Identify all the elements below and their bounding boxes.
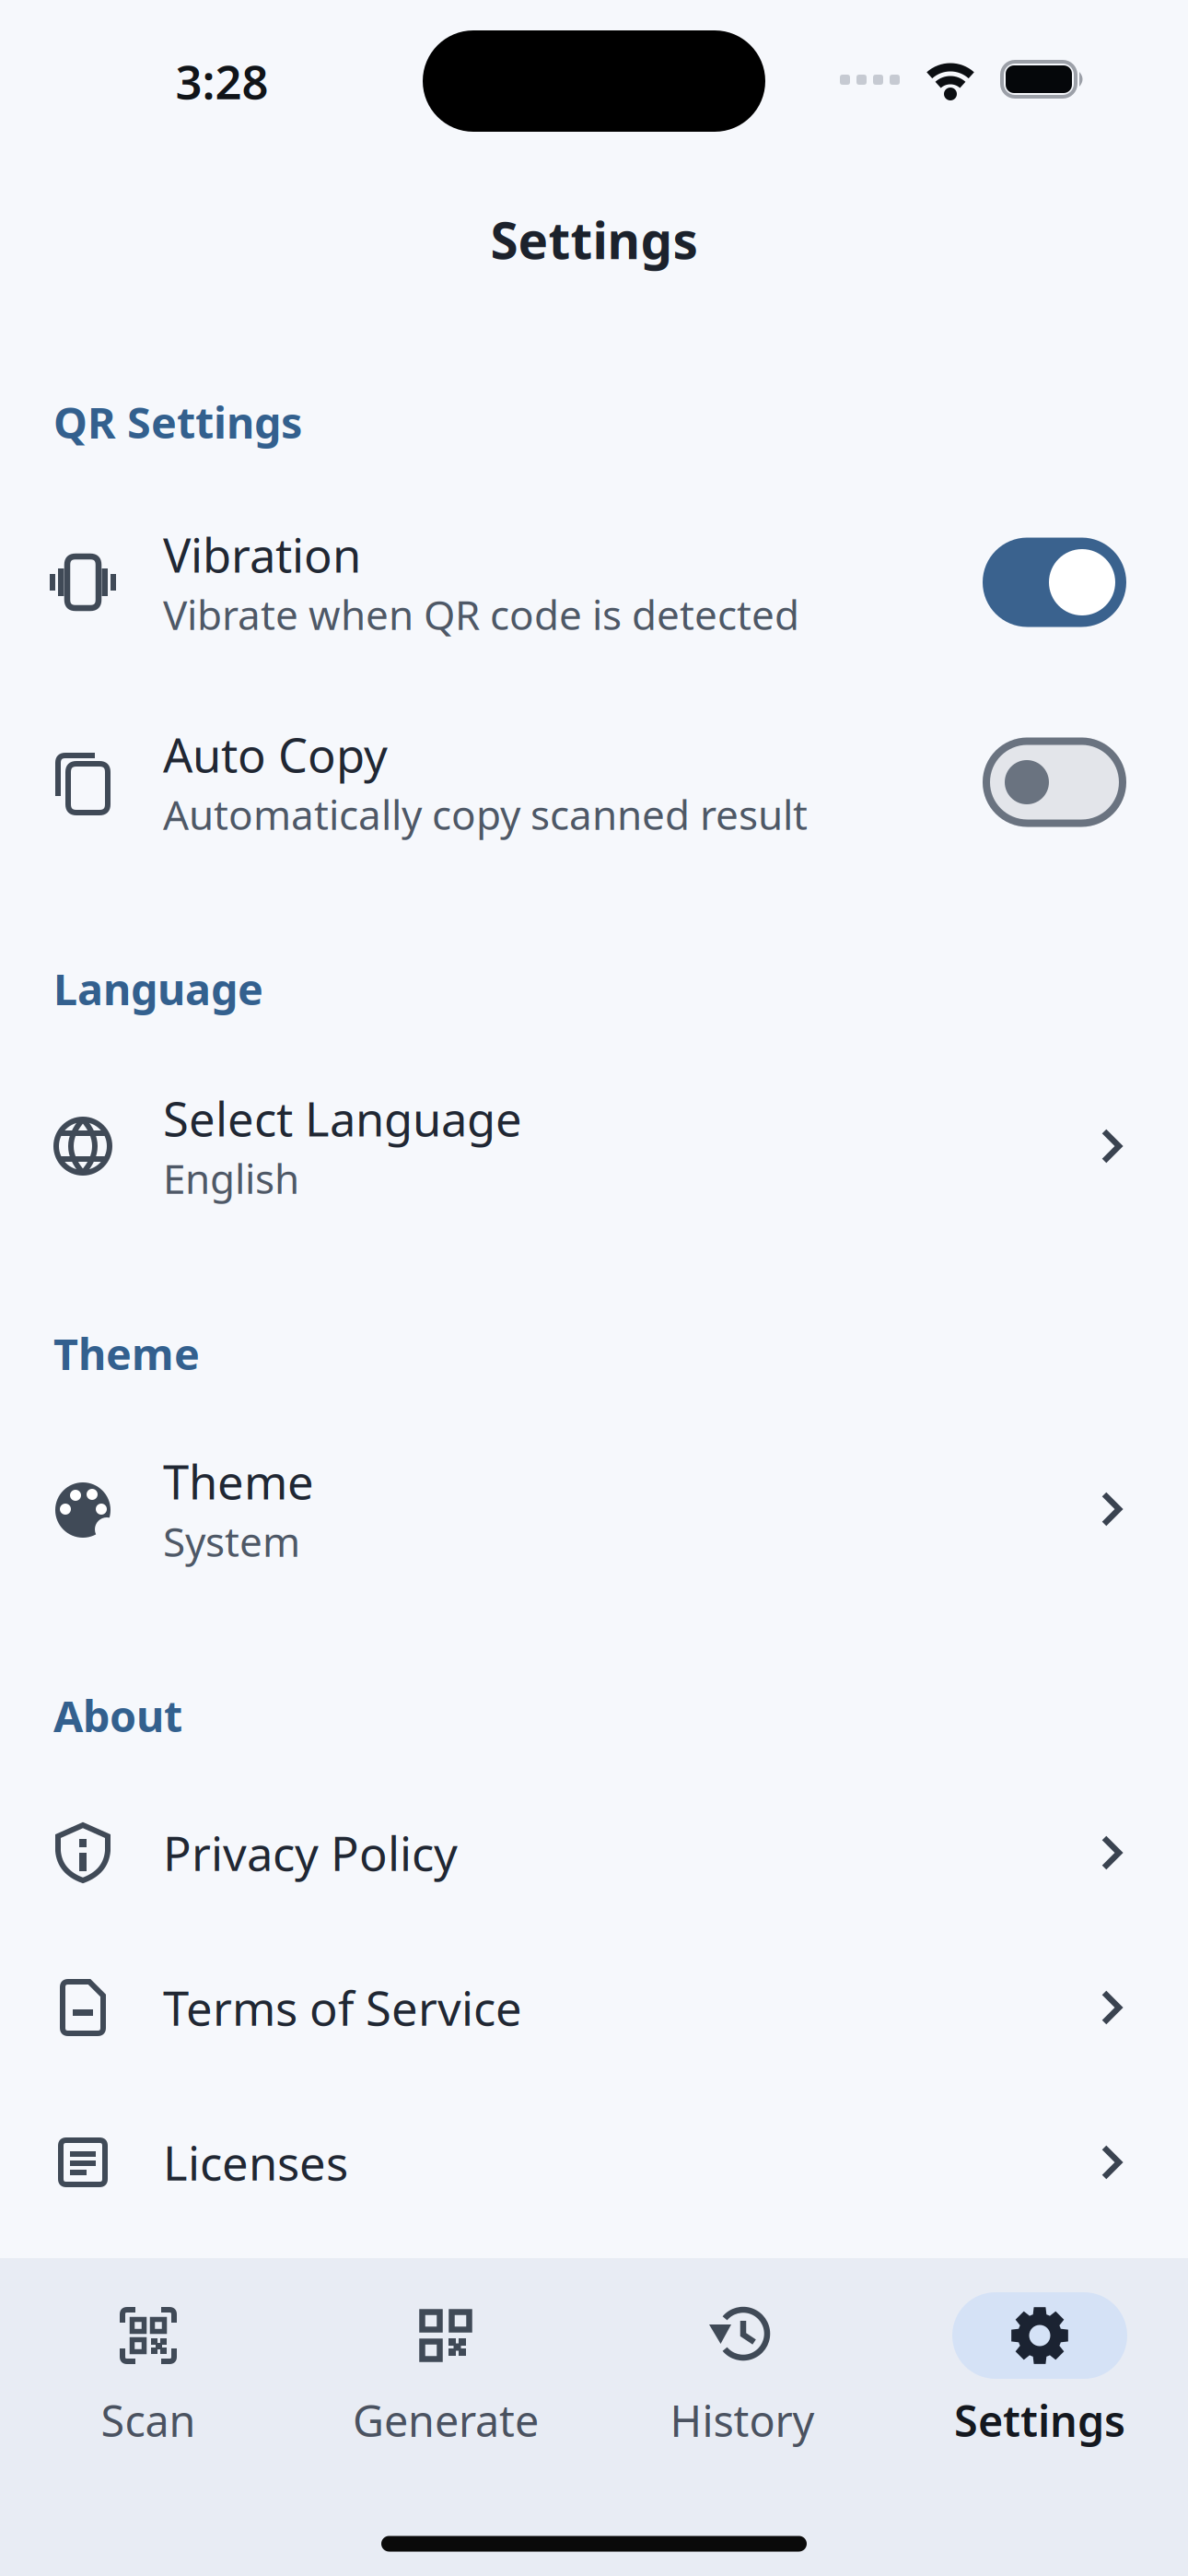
staticText: Theme: [53, 1325, 200, 1382]
staticText: Privacy Policy: [163, 1822, 458, 1884]
button[interactable]: Scan: [10, 2265, 286, 2476]
button[interactable]: Privacy Policy: [0, 1784, 1188, 1922]
staticText: 3:28: [175, 50, 268, 112]
staticText: Generate: [353, 2392, 539, 2449]
staticText: Vibrate when QR code is detected: [163, 587, 799, 641]
button[interactable]: Auto Copy: [0, 704, 1188, 861]
staticText: QR Settings: [53, 393, 302, 451]
button[interactable]: Theme: [0, 1431, 1188, 1587]
staticText: English: [163, 1151, 299, 1205]
button[interactable]: Select Language: [0, 1068, 1188, 1224]
staticText: Language: [53, 960, 263, 1017]
staticText: History: [670, 2392, 815, 2449]
staticText: About: [53, 1687, 182, 1744]
staticText: System: [163, 1514, 300, 1568]
staticText: Auto Copy: [163, 723, 388, 785]
button[interactable]: Generate: [308, 2265, 584, 2476]
button[interactable]: Terms of Service: [0, 1938, 1188, 2077]
button[interactable]: Licenses: [0, 2093, 1188, 2231]
staticText: Automatically copy scanned result: [163, 787, 808, 841]
staticText: Settings: [490, 206, 698, 273]
staticText: Licenses: [163, 2131, 348, 2193]
button[interactable]: Vibration: [0, 504, 1188, 661]
staticText: Theme: [163, 1450, 314, 1512]
staticText: Vibration: [163, 523, 361, 585]
staticText: Terms of Service: [163, 1977, 522, 2039]
staticText: Select Language: [163, 1087, 522, 1149]
staticText: Scan: [101, 2392, 196, 2449]
button[interactable]: Settings: [902, 2265, 1178, 2476]
button[interactable]: History: [604, 2265, 880, 2476]
staticText: Settings: [954, 2392, 1125, 2449]
